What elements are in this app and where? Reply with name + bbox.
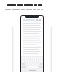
other: Document actions — [36, 19, 41, 21]
button[interactable]: Document actions — [21, 16, 43, 72]
